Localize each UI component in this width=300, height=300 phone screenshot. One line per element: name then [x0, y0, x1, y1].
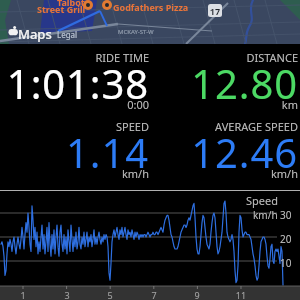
staticText: km: [118, 97, 298, 112]
staticText: 20: [280, 232, 292, 246]
staticText: km/h: [0, 166, 149, 181]
staticText: Godfathers Pizza: [113, 1, 189, 13]
staticText: Maps: [18, 25, 52, 43]
staticText: Talbot: [57, 0, 85, 8]
staticText: 12.46: [118, 125, 298, 179]
staticText: 1:01:38: [0, 56, 149, 110]
staticText: 3: [61, 289, 73, 300]
staticText: Speed: [246, 193, 278, 208]
button[interactable]: Map: [0, 0, 300, 44]
button[interactable]: RIDE TIME: [0, 50, 149, 112]
staticText: 12.80: [118, 56, 298, 110]
staticText: 1: [17, 289, 29, 300]
staticText: 9: [191, 289, 203, 300]
staticText: 7: [148, 289, 160, 300]
staticText: Street Grill: [37, 3, 86, 15]
staticText: km/h: [253, 208, 278, 222]
staticText: RIDE TIME: [0, 50, 149, 65]
staticText: 5: [104, 289, 116, 300]
staticText: SPEED: [0, 119, 149, 134]
staticText: km/h: [118, 166, 298, 181]
staticText: Legal: [57, 29, 78, 40]
button[interactable]: SPEED: [0, 119, 149, 181]
staticText: MCKAY-ST-W: [118, 28, 154, 36]
button[interactable]: Speed chart: [0, 190, 300, 300]
button[interactable]: DISTANCE: [118, 50, 298, 112]
staticText: 30: [280, 208, 292, 222]
staticText: 10: [280, 256, 292, 270]
button[interactable]: AVERAGE SPEED: [118, 119, 298, 181]
staticText: 17: [209, 5, 221, 17]
staticText: DISTANCE: [118, 50, 298, 65]
staticText: 11: [235, 289, 247, 300]
staticText: 0:00: [0, 97, 149, 112]
staticText: 1.14: [0, 125, 149, 179]
staticText: AVERAGE SPEED: [118, 119, 298, 134]
